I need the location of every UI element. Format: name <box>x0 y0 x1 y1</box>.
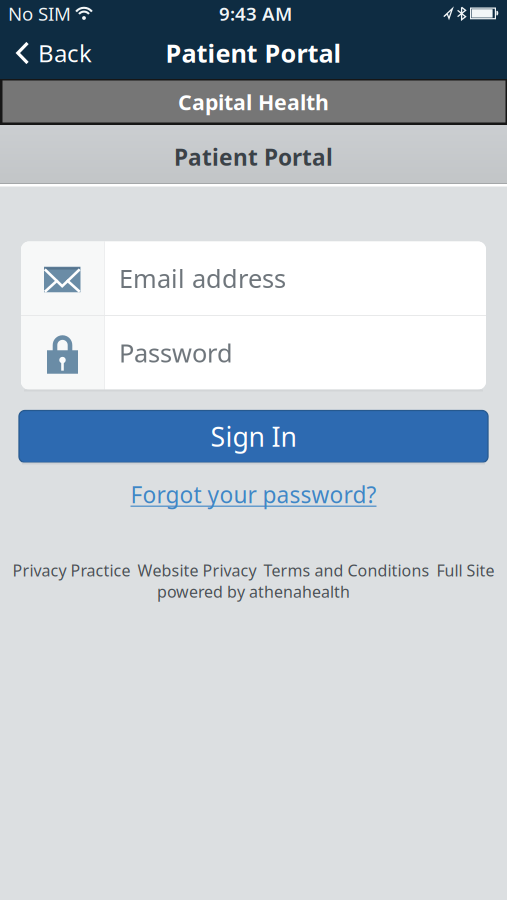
staticText: powered by athenahealth <box>157 581 350 602</box>
staticText: Forgot your password? <box>130 479 376 510</box>
staticText: Capital Health <box>178 88 329 116</box>
staticText: Sign In <box>210 419 296 454</box>
button[interactable]: Forgot your password? <box>130 479 376 510</box>
staticText: Email address <box>119 261 286 295</box>
button[interactable]: Sign In <box>19 410 488 462</box>
staticText: Privacy Practice <box>12 560 130 581</box>
button[interactable]: Full Site <box>436 560 494 581</box>
staticText: Patient Portal <box>174 142 333 172</box>
staticText: Website Privacy <box>137 560 256 581</box>
button[interactable]: Website Privacy <box>137 560 256 581</box>
staticText: Patient Portal <box>165 36 341 70</box>
staticText: No SIM <box>8 1 71 26</box>
button[interactable]: Password <box>105 316 486 389</box>
staticText: Back <box>38 37 92 69</box>
staticText: Full Site <box>436 560 494 581</box>
staticText: Terms and Conditions <box>263 560 429 581</box>
staticText: 9:43 AM <box>219 1 292 26</box>
button[interactable]: Privacy Practice <box>12 560 130 581</box>
button[interactable]: Back <box>16 37 92 69</box>
staticText: Password <box>119 336 233 369</box>
button[interactable]: Terms and Conditions <box>263 560 429 581</box>
button[interactable]: Email address <box>105 241 486 315</box>
